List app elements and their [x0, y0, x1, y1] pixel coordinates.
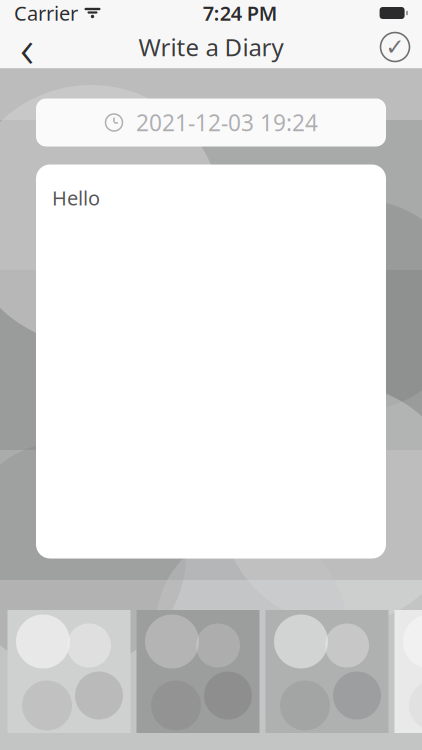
button[interactable]: Photo 4 [394, 610, 422, 733]
staticText: Write a Diary [138, 31, 283, 63]
button[interactable]: Photo 1 [7, 610, 130, 733]
button[interactable]: Photo 3 [265, 610, 388, 733]
staticText: Carrier [14, 0, 78, 26]
button[interactable]: Save diary [373, 26, 417, 68]
button[interactable]: 2021-12-03 19:24 [36, 98, 386, 146]
staticText: 7:24 PM [203, 0, 278, 26]
staticText: Hello [52, 184, 100, 211]
button[interactable]: Back [5, 26, 49, 68]
staticText: 2021-12-03 19:24 [136, 107, 318, 137]
staticText: ✓ [385, 34, 404, 60]
button[interactable]: Hello [36, 164, 386, 558]
staticText: ‹ [20, 12, 34, 82]
button[interactable]: Photo 2 [136, 610, 259, 733]
